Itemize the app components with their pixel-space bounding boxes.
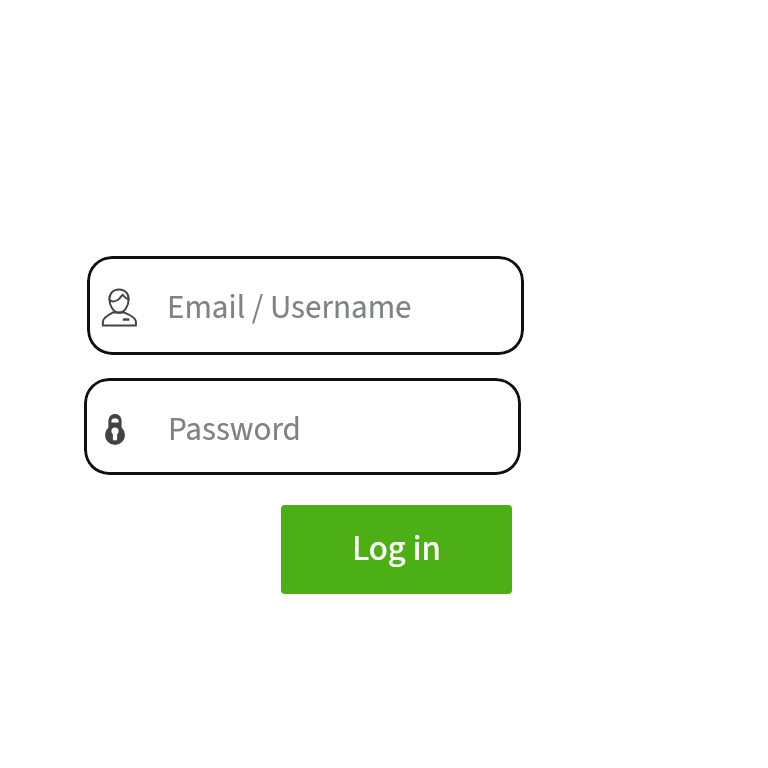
other: Password xyxy=(105,414,125,445)
staticText: Email / Username xyxy=(167,284,412,331)
button[interactable]: Password xyxy=(84,378,521,475)
button[interactable]: Log in xyxy=(281,505,512,594)
staticText: Password xyxy=(168,406,301,453)
button[interactable]: User xyxy=(87,256,524,355)
staticText: Log in xyxy=(352,524,441,574)
other: User xyxy=(102,289,137,326)
